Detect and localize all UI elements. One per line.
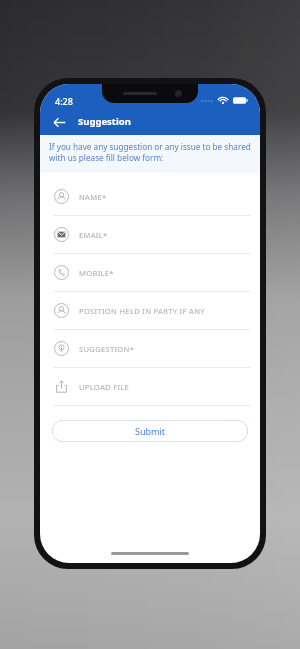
button[interactable]: SUGGESTION* xyxy=(40,330,260,368)
staticText: Submit xyxy=(135,425,166,437)
button[interactable]: UPLOAD FILE xyxy=(40,368,260,406)
staticText: Suggestion xyxy=(78,115,131,128)
staticText: UPLOAD FILE xyxy=(79,382,130,392)
button[interactable]: POSITION HELD IN PARTY IF ANY xyxy=(40,292,260,330)
button[interactable]: MOBILE* xyxy=(40,254,260,292)
staticText: NAME* xyxy=(79,192,107,202)
staticText: 4:28 xyxy=(55,95,73,107)
staticText: EMAIL* xyxy=(79,230,108,240)
button[interactable]: EMAIL* xyxy=(40,216,260,254)
staticText: SUGGESTION* xyxy=(79,344,135,354)
staticText: If you have any suggestion or any issue … xyxy=(49,141,251,163)
staticText: POSITION HELD IN PARTY IF ANY xyxy=(79,306,205,316)
staticText: MOBILE* xyxy=(79,268,114,278)
button[interactable]: Back xyxy=(48,111,70,133)
button[interactable]: NAME* xyxy=(40,178,260,216)
button[interactable]: Submit xyxy=(52,420,248,442)
